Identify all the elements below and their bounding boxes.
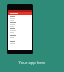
button[interactable] (8, 34, 32, 40)
button[interactable] (8, 27, 32, 34)
button[interactable] (8, 21, 32, 27)
button[interactable] (8, 40, 32, 46)
button[interactable] (8, 15, 32, 21)
staticText: Your app here (0, 60, 64, 65)
button[interactable] (8, 12, 32, 15)
